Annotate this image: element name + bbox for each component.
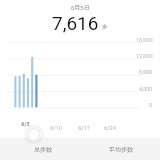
staticText: 6/3 [21,121,30,127]
staticText: 6/10 [50,125,62,131]
staticText: 6月5日 [71,3,90,12]
button[interactable]: 6/3 [11,119,39,129]
button[interactable]: 平均步数 [99,138,144,160]
staticText: 平均步数 [109,145,134,154]
staticText: 4,000 [139,86,153,92]
staticText: 8,000 [139,69,153,75]
staticText: 6/24 [104,125,116,131]
button[interactable]: 总步数 [22,138,64,160]
button[interactable]: 6/24 [96,123,124,133]
staticText: 16,000 [136,37,153,43]
staticText: 总步数 [34,145,53,154]
staticText: 6/17 [78,125,90,131]
button[interactable]: 6/10 [42,123,70,133]
staticText: 7,616 [52,12,99,34]
staticText: 步 [102,23,108,31]
staticText: 12,000 [136,53,153,59]
button[interactable]: 6/17 [70,123,98,133]
staticText: 0 [149,102,153,108]
